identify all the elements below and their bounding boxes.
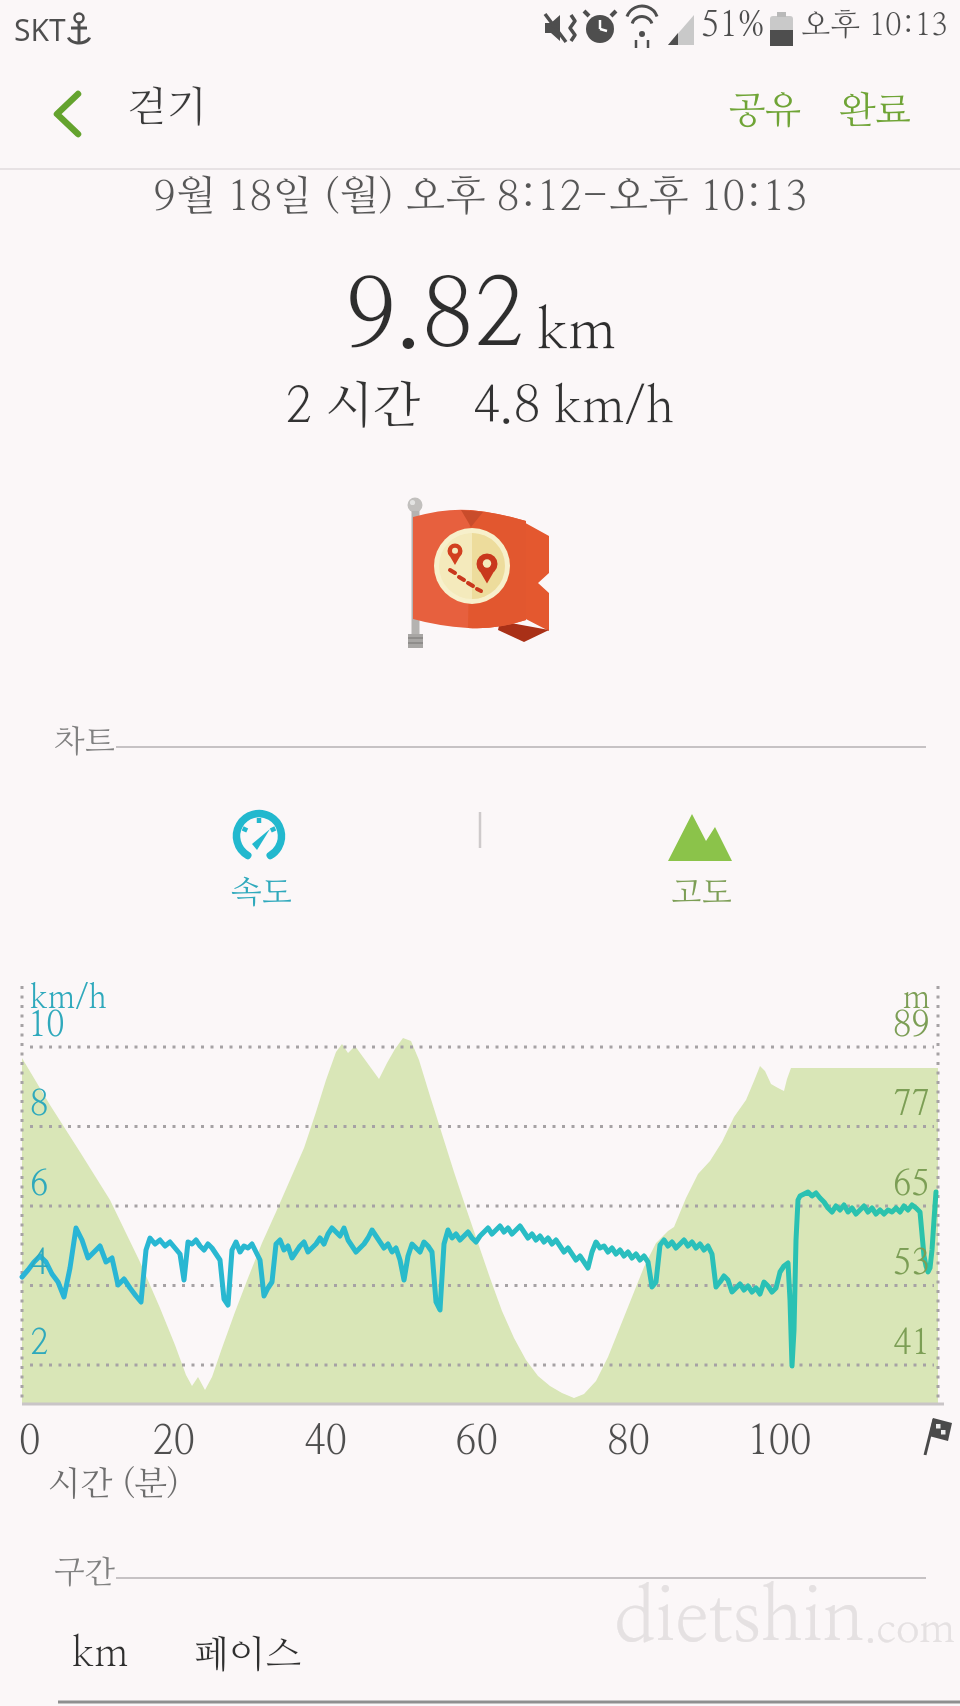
staticText: km <box>72 1634 129 1674</box>
staticText: km <box>537 304 616 360</box>
staticText: 40 <box>304 1422 347 1462</box>
staticText: 4 <box>30 1247 49 1281</box>
staticText: 6 <box>30 1168 49 1202</box>
staticText: 페이스 <box>193 1637 302 1675</box>
staticText: .com <box>865 1608 955 1650</box>
button[interactable]: 완료 <box>830 84 920 140</box>
staticText: 60 <box>455 1422 498 1462</box>
button[interactable] <box>38 82 102 146</box>
staticText: 41 <box>893 1327 930 1361</box>
staticText: SKT <box>14 9 66 50</box>
staticText: 51% <box>701 9 765 43</box>
staticText: 100 <box>747 1422 812 1462</box>
staticText: m <box>903 982 930 1014</box>
staticText: 2 시간 <box>285 382 421 432</box>
staticText: dietshin <box>614 1582 865 1656</box>
staticText: 차트 <box>54 726 115 758</box>
button[interactable] <box>195 790 330 920</box>
staticText: 8 <box>30 1088 49 1122</box>
button[interactable] <box>635 790 770 920</box>
staticText: 시간 (분) <box>48 1468 180 1502</box>
staticText: 53 <box>893 1247 930 1281</box>
staticText: 65 <box>893 1168 930 1202</box>
staticText: 9.82 <box>345 270 525 365</box>
staticText: 공유 <box>729 93 802 131</box>
staticText: 89 <box>893 1009 930 1043</box>
staticText: 오후 10:13 <box>801 10 948 41</box>
staticText: 2 <box>30 1327 49 1361</box>
staticText: 20 <box>152 1422 195 1462</box>
staticText: 77 <box>893 1088 930 1122</box>
staticText: km/h <box>30 982 107 1014</box>
staticText: 고도 <box>671 877 732 909</box>
staticText: 걷기 <box>127 87 207 129</box>
staticText: 10 <box>28 1009 65 1043</box>
staticText: 80 <box>607 1422 650 1462</box>
staticText: 4.8 km/h <box>473 382 675 432</box>
staticText: 속도 <box>231 877 292 909</box>
staticText: 9월 18일 (월) 오후 8:12-오후 10:13 <box>153 176 808 218</box>
staticText: 완료 <box>839 93 912 131</box>
button[interactable]: 공유 <box>720 84 810 140</box>
staticText: 구간 <box>54 1557 115 1589</box>
staticText: 0 <box>19 1422 41 1462</box>
